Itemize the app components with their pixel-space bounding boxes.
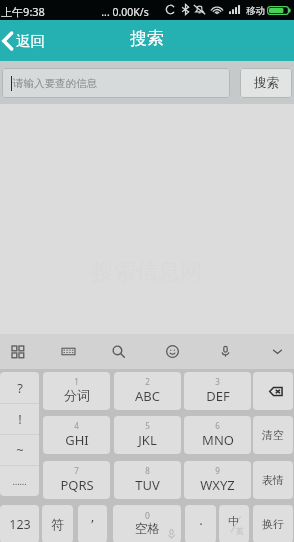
button[interactable]: 清空 [253,416,293,454]
button[interactable]: ~ [0,435,39,465]
button[interactable]: 请输入要查的信息 [2,68,230,98]
staticText: ’ [91,515,94,533]
staticText: 3 [215,376,220,387]
button[interactable]: Hide keyboard [259,334,294,369]
staticText: WXYZ [200,476,235,494]
staticText: 表情 [262,473,284,487]
staticText: 6 [215,420,220,431]
button[interactable]: 返回 [0,20,55,61]
staticText: 9 [215,465,220,476]
button[interactable]: 2 [114,372,181,410]
button[interactable]: 4 [43,416,110,454]
staticText: ? [17,379,23,397]
button[interactable]: Numeric keypad [50,334,86,369]
staticText: 清空 [262,428,284,442]
staticText: · [199,515,203,533]
staticText: ... 0.00K/s [101,5,149,19]
staticText: JKL [138,431,157,449]
button[interactable]: 搜索 [240,68,292,98]
button[interactable]: 换行 [253,505,293,542]
button[interactable]: 中 [219,505,249,542]
staticText: PQRS [60,476,94,494]
staticText: …… [12,475,27,487]
staticText: 7 [74,465,79,476]
button[interactable]: 123 [0,505,39,542]
staticText: 搜索 [130,28,164,49]
button[interactable]: Emoji [154,334,190,369]
staticText: DEF [206,387,230,405]
button[interactable]: Voice input [207,334,243,369]
staticText: 空格 [135,521,160,537]
staticText: 中 [228,514,239,528]
button[interactable]: · [185,505,216,542]
button[interactable]: 7 [43,461,110,499]
staticText: 2 [145,376,150,387]
button[interactable]: 3 [184,372,251,410]
button[interactable]: Keyboard layouts [0,334,36,369]
button[interactable]: Delete [253,372,293,410]
staticText: MNO [202,431,234,449]
button[interactable]: 8 [114,461,181,499]
staticText: TUV [135,476,160,494]
staticText: 4 [74,420,79,431]
button[interactable]: 符 [42,505,73,542]
staticText: ~ [16,441,24,459]
button[interactable]: ? [0,372,39,403]
staticText: 返回 [16,32,45,50]
staticText: 5 [145,420,150,431]
staticText: 0 [145,510,150,522]
button[interactable]: ! [0,404,39,434]
button[interactable]: Search [100,334,136,369]
staticText: 移动 [246,5,265,17]
staticText: 分词 [64,387,90,403]
staticText: ! [18,410,22,428]
button[interactable]: 5 [114,416,181,454]
button[interactable]: 9 [184,461,251,499]
button[interactable]: …… [0,466,39,496]
staticText: 上午9:38 [1,4,45,19]
staticText: 英 [236,526,244,536]
button[interactable]: 表情 [253,461,293,499]
staticText: 请输入要查的信息 [13,77,97,90]
button[interactable]: 6 [184,416,251,454]
staticText: 1 [74,376,79,387]
staticText: 换行 [262,517,284,531]
staticText: 搜索 [254,75,279,91]
button[interactable]: ’ [78,505,107,542]
staticText: GHI [65,431,89,449]
staticText: 符 [51,516,64,532]
staticText: 8 [145,465,150,476]
button[interactable]: 1 [43,372,110,410]
button[interactable]: 0 [113,505,181,542]
staticText: 123 [9,516,31,533]
staticText: ABC [135,387,160,405]
